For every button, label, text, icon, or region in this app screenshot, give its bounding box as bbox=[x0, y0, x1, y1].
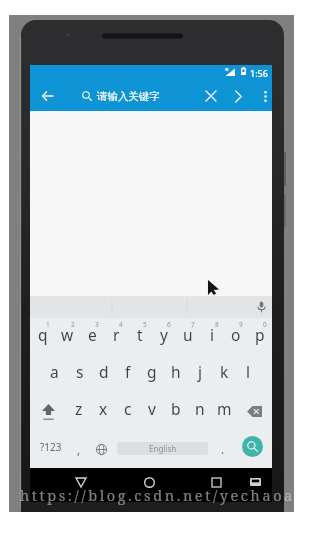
button[interactable]: 6 bbox=[152, 318, 176, 356]
button[interactable]: Search bbox=[242, 436, 263, 457]
button[interactable]: a bbox=[42, 356, 67, 393]
button[interactable]: Change language bbox=[90, 430, 113, 468]
staticText: 9 bbox=[239, 320, 243, 329]
staticText: n bbox=[195, 398, 205, 419]
staticText: 1:56 bbox=[250, 67, 268, 79]
button[interactable]: l bbox=[236, 356, 260, 393]
button[interactable]: j bbox=[188, 356, 212, 393]
staticText: w bbox=[61, 324, 74, 345]
staticText: 3 bbox=[95, 320, 99, 329]
staticText: x bbox=[99, 398, 108, 419]
button[interactable]: Back bbox=[34, 82, 60, 110]
button[interactable]: s bbox=[67, 356, 92, 393]
staticText: q bbox=[38, 324, 48, 345]
button[interactable]: n bbox=[188, 393, 212, 430]
staticText: 7 bbox=[191, 320, 195, 329]
staticText: m bbox=[217, 398, 232, 419]
staticText: y bbox=[160, 324, 168, 345]
button[interactable]: 7 bbox=[176, 318, 200, 356]
button[interactable]: v bbox=[140, 393, 164, 430]
button[interactable]: 9 bbox=[224, 318, 248, 356]
button[interactable]: . bbox=[212, 430, 234, 468]
button[interactable]: Hide keyboard bbox=[239, 468, 271, 496]
button[interactable]: ?123 bbox=[34, 430, 68, 468]
staticText: l bbox=[246, 361, 250, 382]
staticText: 5 bbox=[143, 320, 147, 329]
staticText: e bbox=[88, 324, 97, 345]
button[interactable]: Home bbox=[133, 468, 165, 496]
staticText: 6 bbox=[167, 320, 171, 329]
staticText: f bbox=[125, 361, 131, 382]
staticText: o bbox=[231, 324, 241, 345]
staticText: j bbox=[198, 361, 202, 382]
button[interactable]: Recents bbox=[200, 468, 232, 496]
button[interactable]: k bbox=[212, 356, 236, 393]
button[interactable]: Backspace bbox=[236, 393, 272, 430]
button[interactable]: m bbox=[212, 393, 236, 430]
staticText: b bbox=[171, 398, 181, 419]
button[interactable]: z bbox=[66, 393, 91, 430]
staticText: 请输入关键字 bbox=[97, 90, 160, 103]
staticText: k bbox=[220, 361, 229, 382]
button[interactable]: x bbox=[91, 393, 116, 430]
staticText: 1 bbox=[46, 320, 50, 329]
staticText: g bbox=[147, 361, 157, 382]
button[interactable]: d bbox=[92, 356, 116, 393]
button[interactable]: 2 bbox=[55, 318, 80, 356]
button[interactable]: Next bbox=[225, 82, 251, 110]
staticText: h bbox=[171, 361, 181, 382]
button[interactable]: 1 bbox=[30, 318, 55, 356]
button[interactable]: English bbox=[117, 442, 208, 455]
staticText: 4 bbox=[119, 320, 123, 329]
staticText: p bbox=[255, 324, 265, 345]
button[interactable]: Clear bbox=[198, 82, 224, 110]
staticText: 0 bbox=[263, 320, 267, 329]
staticText: s bbox=[76, 361, 84, 382]
staticText: ?123 bbox=[40, 440, 62, 454]
staticText: https://blog.csdn.net/yechaoa bbox=[20, 485, 294, 505]
button[interactable]: Back bbox=[65, 468, 97, 496]
button[interactable]: f bbox=[116, 356, 140, 393]
staticText: d bbox=[99, 361, 109, 382]
button[interactable]: 0 bbox=[248, 318, 272, 356]
button[interactable]: 3 bbox=[80, 318, 104, 356]
staticText: v bbox=[148, 398, 156, 419]
staticText: u bbox=[183, 324, 193, 345]
staticText: English bbox=[149, 443, 177, 454]
button[interactable]: c bbox=[116, 393, 140, 430]
button[interactable]: More options bbox=[254, 82, 276, 110]
button[interactable]: b bbox=[164, 393, 188, 430]
button[interactable]: 5 bbox=[128, 318, 152, 356]
staticText: 8 bbox=[215, 320, 219, 329]
staticText: 2 bbox=[71, 320, 75, 329]
button[interactable]: h bbox=[164, 356, 188, 393]
button[interactable]: Voice input bbox=[257, 301, 266, 313]
staticText: t bbox=[137, 324, 143, 345]
button[interactable]: g bbox=[140, 356, 164, 393]
staticText: . bbox=[221, 441, 225, 457]
button[interactable]: 8 bbox=[200, 318, 224, 356]
button[interactable]: 4 bbox=[104, 318, 128, 356]
button[interactable]: , bbox=[68, 430, 89, 468]
staticText: z bbox=[75, 398, 83, 419]
staticText: , bbox=[77, 441, 81, 457]
button[interactable]: Shift bbox=[30, 393, 66, 430]
staticText: c bbox=[124, 398, 132, 419]
staticText: a bbox=[50, 361, 59, 382]
staticText: r bbox=[113, 324, 120, 345]
staticText: i bbox=[210, 324, 214, 345]
